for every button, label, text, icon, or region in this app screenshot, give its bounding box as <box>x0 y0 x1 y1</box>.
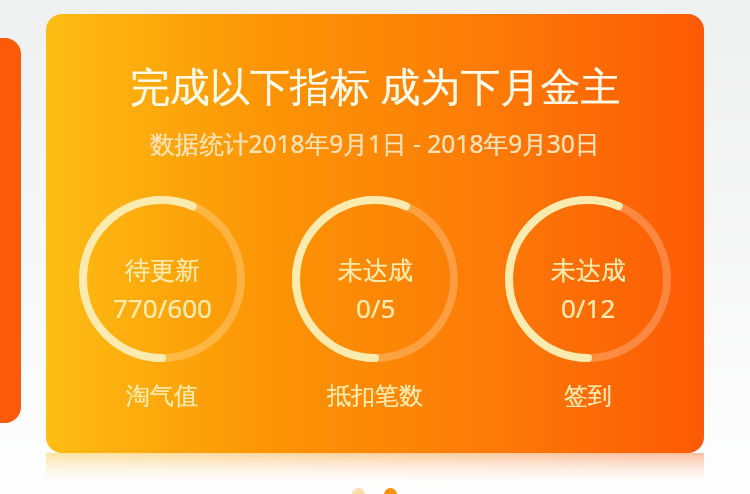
button[interactable]: Page 1 <box>352 488 365 494</box>
staticText: 签到 <box>564 381 612 411</box>
button[interactable]: 完成以下指标 成为下月金主 <box>46 14 704 453</box>
staticText: 数据统计2018年9月1日 - 2018年9月30日 <box>150 127 600 161</box>
staticText: 未达成 <box>551 255 626 286</box>
staticText: 0/12 <box>561 290 616 325</box>
button[interactable]: 淘气值 <box>92 381 232 411</box>
button[interactable]: 淘气值 <box>79 196 245 362</box>
staticText: 未达成 <box>338 255 413 286</box>
staticText: 0/5 <box>356 290 396 325</box>
staticText: 完成以下指标 成为下月金主 <box>130 58 621 113</box>
button[interactable]: 签到 <box>505 196 671 362</box>
button[interactable]: Previous card <box>0 38 21 423</box>
staticText: 淘气值 <box>126 381 198 411</box>
staticText: 770/600 <box>113 290 212 325</box>
staticText: 抵扣笔数 <box>327 381 423 411</box>
button[interactable]: 抵扣笔数 <box>305 381 445 411</box>
button[interactable]: 抵扣笔数 <box>292 196 458 362</box>
staticText: 待更新 <box>125 255 200 286</box>
button[interactable]: 签到 <box>518 381 658 411</box>
button[interactable]: Page 2 <box>384 488 397 494</box>
